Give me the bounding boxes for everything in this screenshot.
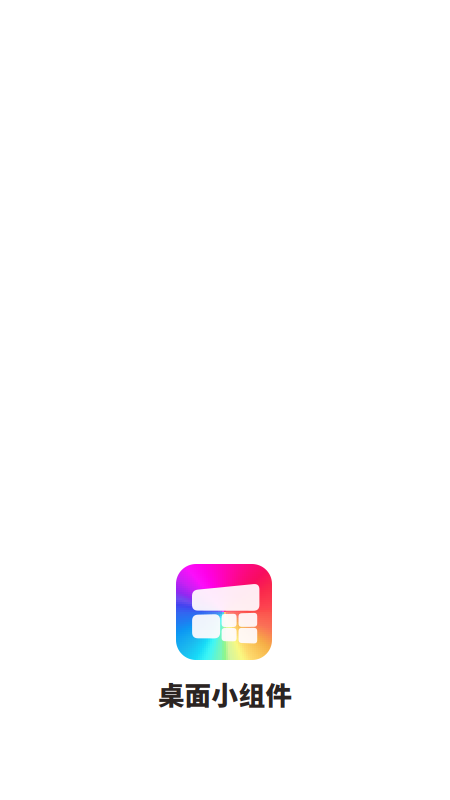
staticText: 桌面小组件 xyxy=(157,675,292,713)
